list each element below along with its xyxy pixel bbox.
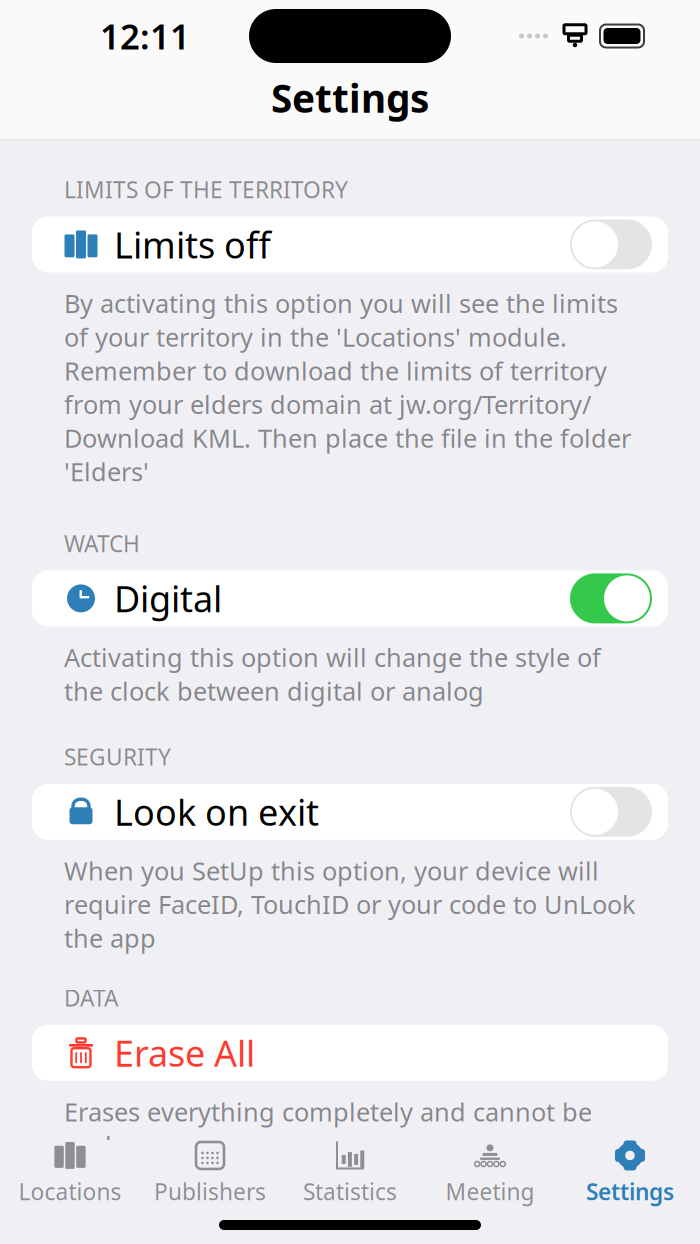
staticText: Locations [18,1176,121,1206]
button[interactable]: Statistics [280,1140,420,1206]
button[interactable]: Look on exit [32,784,668,840]
staticText: Digital [114,574,222,622]
staticText: Settings [586,1176,674,1206]
button[interactable]: Digital [32,570,668,626]
staticText: 12:11 [100,13,190,59]
staticText: Erase All [114,1029,255,1077]
staticText: Erases everything completely and cannot … [64,1095,592,1162]
staticText: When you SetUp this option, your device … [64,854,636,955]
staticText: LIMITS OF THE TERRITORY [64,174,348,204]
button[interactable]: Settings [560,1140,700,1206]
button[interactable]: Publishers [140,1140,280,1206]
staticText: Activating this option will change the s… [64,640,601,708]
staticText: By activating this option you will see t… [64,286,631,488]
staticText: Look on exit [114,788,319,836]
staticText: WATCH [64,528,140,558]
staticText: Publishers [154,1176,266,1206]
button[interactable]: Limits off [32,216,668,272]
button[interactable]: Meeting [420,1140,560,1206]
staticText: Statistics [303,1176,397,1206]
staticText: SEGURITY [64,742,171,772]
staticText: Limits off [114,220,271,268]
staticText: DATA [64,983,118,1013]
staticText: Meeting [445,1176,534,1206]
button[interactable]: Locations [0,1140,140,1206]
staticText: Settings [271,72,429,123]
button[interactable]: Erase All [32,1025,668,1081]
staticText: DATA BASE [64,1190,178,1220]
